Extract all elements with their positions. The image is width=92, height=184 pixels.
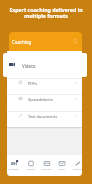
- staticText: Spreadsheets: [28, 97, 53, 102]
- button[interactable]: Videos: [3, 53, 87, 77]
- button[interactable]: Inbox: [54, 155, 69, 176]
- staticText: Inbox: [54, 167, 69, 170]
- staticText: Coaching: [7, 167, 21, 170]
- staticText: Progress: [39, 167, 54, 170]
- staticText: Text documents: [28, 114, 58, 119]
- button[interactable]: Coaching: [7, 155, 21, 176]
- button[interactable]: Text documents: [7, 111, 82, 127]
- staticText: Content: [23, 167, 38, 170]
- button[interactable]: Content: [23, 155, 38, 176]
- button[interactable]: Progress: [39, 155, 54, 176]
- button[interactable]: Logbook: [70, 155, 82, 176]
- button[interactable]: PDFs: [7, 78, 82, 94]
- button[interactable]: Coaching: [9, 32, 82, 52]
- staticText: Expert coaching delivered in multiple fo…: [0, 6, 92, 20]
- button[interactable]: Spreadsheets: [7, 94, 82, 110]
- staticText: PDFs: [28, 81, 38, 86]
- staticText: Logbook: [70, 167, 82, 170]
- staticText: Coaching: [12, 39, 32, 45]
- button[interactable]: Search: [72, 38, 79, 45]
- staticText: Videos: [22, 63, 36, 69]
